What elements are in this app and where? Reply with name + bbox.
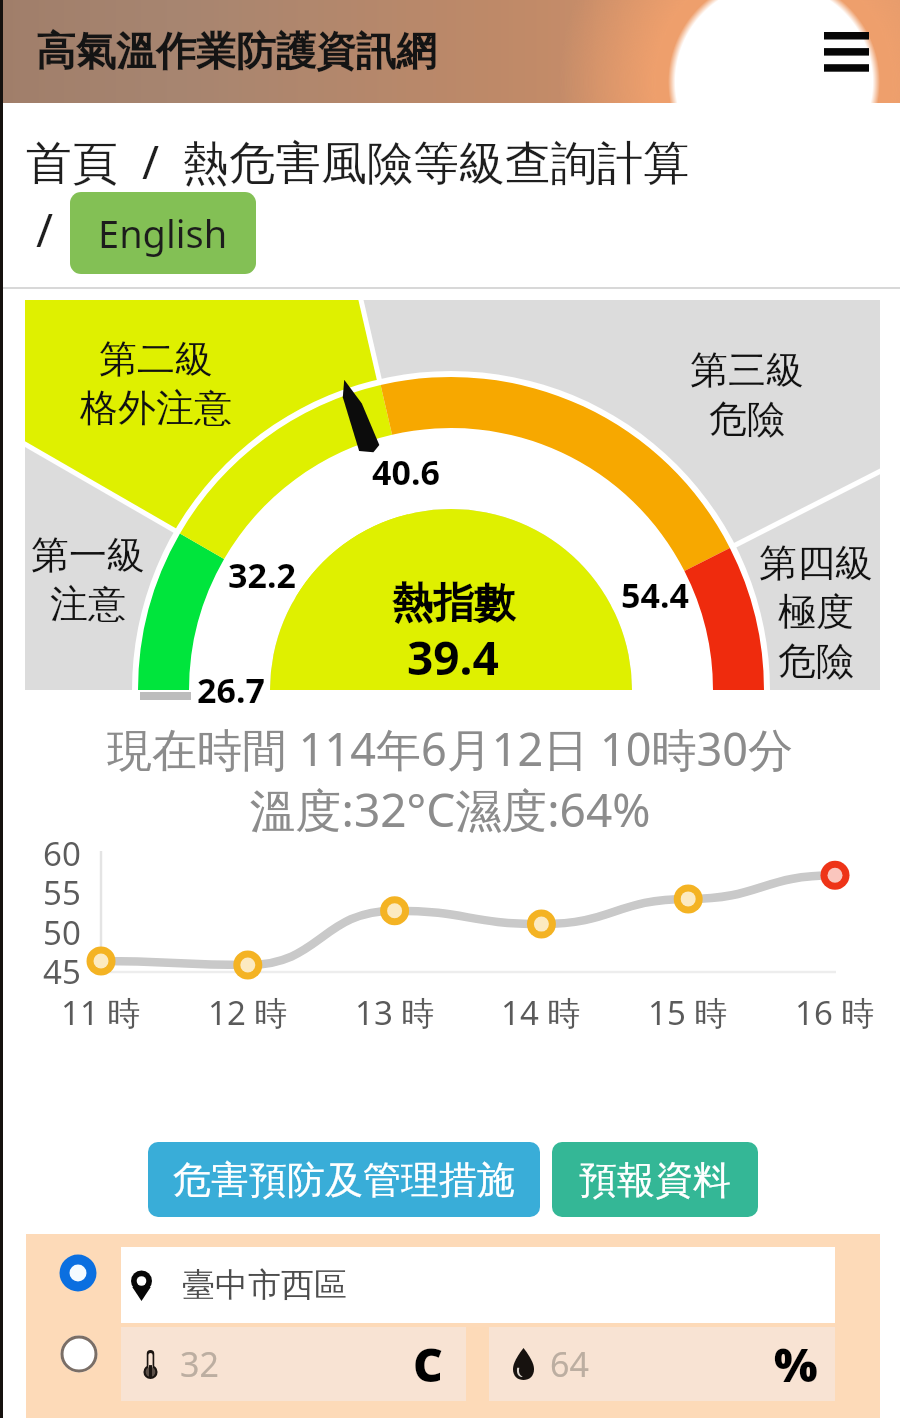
staticText: 26.7 [197, 667, 265, 713]
staticText: 32 [180, 1341, 219, 1387]
button[interactable]: 預報資料 [552, 1142, 758, 1217]
button[interactable]: Enter temperature and humidity [49, 1324, 109, 1384]
button[interactable]: 危害預防及管理措施 [148, 1142, 540, 1217]
staticText: 60 [43, 835, 81, 876]
staticText: 危害預防及管理措施 [173, 1156, 515, 1204]
staticText: 第一級 注意 [31, 531, 145, 628]
staticText: 熱指數 [392, 578, 515, 630]
staticText: 溫度:32°C濕度:64% [0, 778, 900, 841]
staticText: 第三級 危險 [690, 346, 804, 443]
staticText: C [413, 1333, 443, 1396]
staticText: 14 時 [501, 990, 581, 1035]
staticText: 45 [43, 949, 81, 994]
staticText: 64 [550, 1341, 589, 1387]
staticText: 現在時間 114年6月12日 10時30分 [0, 718, 900, 779]
staticText: % [774, 1333, 818, 1396]
button[interactable]: English [70, 192, 256, 274]
staticText: 13 時 [355, 990, 435, 1035]
staticText: 臺中市西區 [182, 1264, 347, 1306]
button[interactable]: Use district forecast [48, 1243, 108, 1303]
staticText: 39.4 [407, 626, 499, 689]
staticText: 預報資料 [579, 1156, 731, 1204]
staticText: 第二級 格外注意 [80, 335, 232, 432]
staticText: 54.4 [621, 572, 689, 618]
staticText: 32.2 [228, 552, 296, 598]
button[interactable]: 32 [121, 1327, 466, 1401]
staticText: English [98, 207, 228, 259]
staticText: 40.6 [372, 449, 440, 495]
staticText: 50 [43, 910, 81, 955]
button[interactable]: 首頁 / 熱危害風險等級查詢計算 [26, 130, 689, 193]
staticText: 第四級 極度 危險 [759, 539, 873, 685]
staticText: 11 時 [61, 990, 141, 1035]
button[interactable]: 64 [489, 1327, 835, 1401]
staticText: 15 時 [648, 990, 728, 1035]
staticText: 16 時 [795, 990, 875, 1035]
staticText: 12 時 [208, 990, 288, 1035]
staticText: / [36, 198, 54, 261]
button[interactable]: Menu [816, 24, 877, 80]
button[interactable]: 臺中市西區 [121, 1247, 835, 1323]
staticText: 55 [43, 870, 81, 915]
staticText: 高氣溫作業防護資訊網 [36, 26, 436, 76]
